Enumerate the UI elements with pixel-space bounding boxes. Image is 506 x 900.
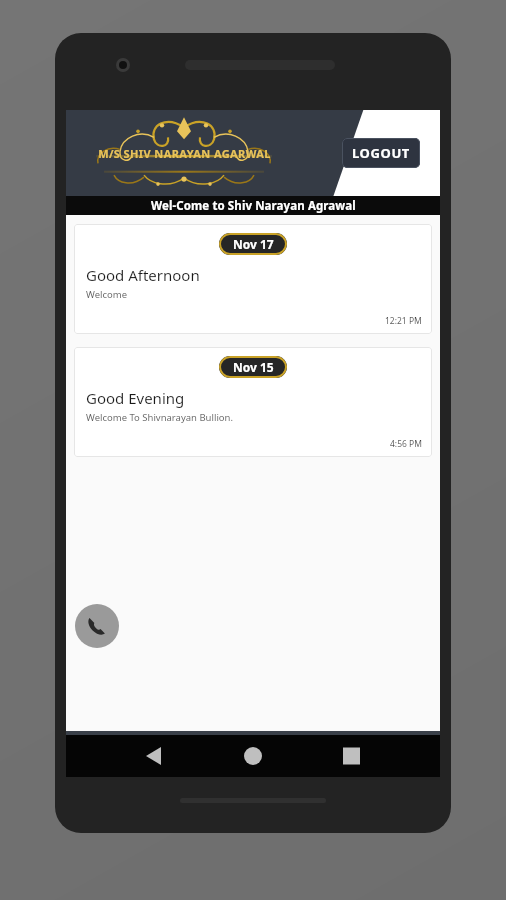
staticText: 12:21 PM (385, 315, 422, 327)
staticText: Good Evening (86, 388, 185, 408)
button[interactable]: Nov 17 (74, 224, 432, 334)
staticText: Nov 15 (233, 359, 274, 375)
staticText: M/S SHIV NARAYAN AGARWAL (98, 146, 271, 161)
staticText: Welcome (86, 288, 128, 301)
button[interactable]: Bank Details (252, 731, 346, 777)
staticText: Nov 17 (233, 236, 274, 252)
button[interactable]: LOGOUT (342, 138, 420, 168)
button[interactable]: Call (75, 604, 119, 648)
staticText: Good Afternoon (86, 265, 200, 285)
button[interactable]: Updates (159, 731, 252, 777)
staticText: Wel-Come to Shiv Narayan Agrawal (151, 198, 356, 214)
button[interactable]: Nov 15 (74, 347, 432, 457)
staticText: LOGOUT (352, 144, 410, 162)
button[interactable]: Live Rates (66, 731, 159, 777)
staticText: Welcome To Shivnarayan Bullion. (86, 411, 234, 424)
staticText: 4:56 PM (390, 438, 422, 450)
button[interactable]: Contact (346, 731, 440, 777)
